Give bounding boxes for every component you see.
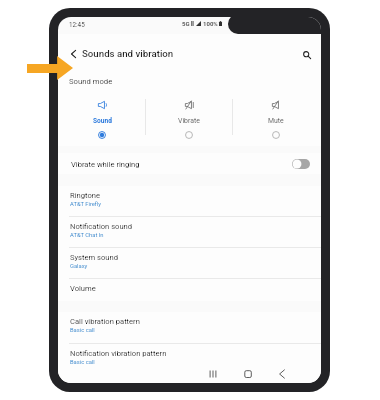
staticText: Galaxy (70, 263, 88, 270)
button[interactable]: Vibrate while ringing (58, 153, 321, 174)
staticText: AT&T Chat In (70, 232, 104, 239)
button[interactable]: Notification sound (58, 217, 321, 248)
button[interactable]: Notification vibration pattern (58, 344, 321, 376)
staticText: AT&T Firefly (70, 201, 101, 208)
button[interactable]: Search (297, 45, 317, 65)
staticText: Sound (93, 117, 112, 125)
staticText: Sounds and vibration (82, 48, 174, 59)
staticText: System sound (70, 253, 118, 262)
button[interactable]: Back (272, 364, 292, 383)
button[interactable]: Home (238, 364, 258, 383)
button[interactable]: Ringtone (58, 186, 321, 217)
button[interactable]: Call vibration pattern (58, 312, 321, 344)
staticText: Ringtone (70, 191, 100, 200)
staticText: Notification sound (70, 222, 133, 231)
button[interactable]: Volume (58, 279, 321, 300)
staticText: Vibrate while ringing (71, 160, 140, 169)
staticText: 100% (203, 20, 218, 27)
staticText: Mute (268, 117, 284, 125)
staticText: Sound mode (69, 77, 113, 86)
staticText: Basic call (70, 359, 95, 366)
staticText: 12:45 (69, 21, 85, 28)
staticText: 5G (182, 20, 190, 27)
button[interactable]: Vibrate (147, 94, 231, 144)
button[interactable]: Navigate up (63, 43, 84, 65)
button[interactable]: System sound (58, 248, 321, 279)
staticText: Notification vibration pattern (70, 349, 167, 358)
button[interactable]: Mute (234, 94, 318, 144)
button[interactable]: Sound (60, 94, 144, 144)
staticText: Volume (70, 284, 96, 293)
staticText: Basic call (70, 327, 95, 334)
button[interactable]: Recent apps (203, 364, 223, 383)
staticText: Vibrate (178, 117, 200, 125)
staticText: Call vibration pattern (70, 317, 140, 326)
